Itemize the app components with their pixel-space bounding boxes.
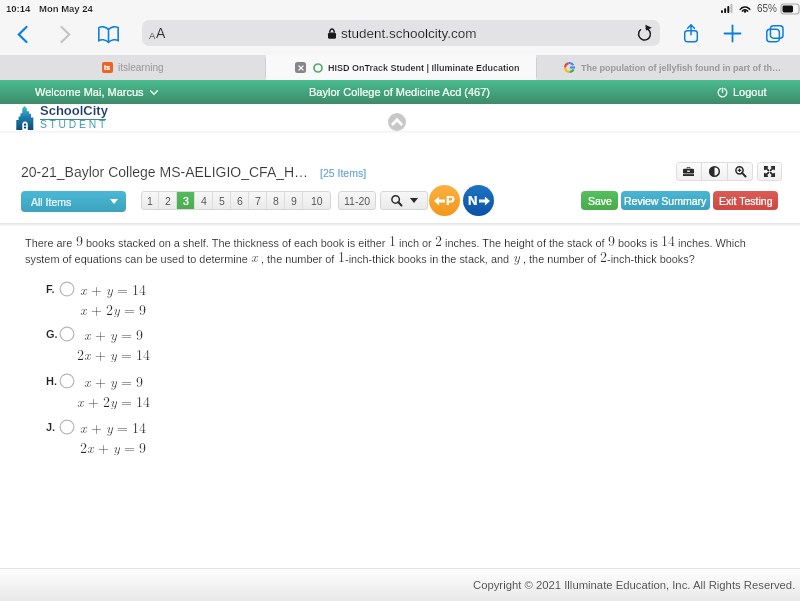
staticText: student.schoolcity.com: [341, 26, 477, 41]
button[interactable]: Back: [8, 20, 38, 48]
staticText: , the number of: [261, 253, 335, 265]
staticText: x: [80, 299, 87, 317]
button[interactable]: 3: [177, 191, 194, 210]
staticText: =: [117, 279, 128, 299]
button[interactable]: Welcome Mai, Marcus: [35, 80, 158, 104]
button[interactable]: Full screen: [757, 162, 782, 181]
button[interactable]: 10: [303, 191, 331, 210]
button[interactable]: 4: [195, 191, 212, 210]
staticText: J.: [46, 421, 56, 433]
button[interactable]: Bookmarks: [94, 21, 122, 47]
button[interactable]: J.: [44, 417, 156, 455]
staticText: y: [110, 324, 117, 344]
staticText: F.: [46, 283, 55, 295]
staticText: SchoolCity: [40, 103, 108, 118]
staticText: y: [110, 344, 117, 362]
staticText: system of equations can be used to deter…: [25, 253, 248, 265]
button[interactable]: Save: [581, 191, 618, 210]
staticText: x: [84, 371, 91, 391]
staticText: G.: [46, 328, 58, 340]
staticText: 2: [600, 246, 607, 266]
button[interactable]: Previous page: [429, 185, 460, 216]
button[interactable]: 11-20: [338, 191, 376, 210]
button[interactable]: 2: [159, 191, 176, 210]
button[interactable]: All Items: [21, 191, 126, 212]
button[interactable]: ts: [0, 55, 266, 80]
staticText: x: [80, 279, 87, 299]
staticText: The population of jellyfish found in par…: [581, 63, 781, 73]
staticText: Mon May 24: [39, 3, 93, 14]
staticText: 2: [77, 344, 84, 362]
button[interactable]: Share: [678, 20, 704, 46]
button[interactable]: Reload: [634, 23, 654, 43]
button[interactable]: Exit Testing: [713, 191, 778, 210]
staticText: There are: [25, 237, 73, 249]
staticText: 9: [139, 437, 146, 455]
staticText: y: [513, 246, 520, 266]
staticText: =: [117, 417, 128, 437]
staticText: 14: [132, 417, 146, 437]
staticText: inches. Which: [678, 237, 746, 249]
button[interactable]: [25 Items]: [320, 167, 367, 179]
button[interactable]: Search items: [380, 191, 428, 210]
button[interactable]: Forward: [50, 20, 80, 48]
button[interactable]: Show tabs: [761, 20, 787, 46]
staticText: 7: [255, 195, 261, 207]
staticText: 9: [136, 324, 143, 344]
button[interactable]: H.: [44, 371, 156, 409]
button[interactable]: Contrast: [702, 162, 727, 181]
staticText: H.: [46, 375, 57, 387]
staticText: 1: [389, 230, 396, 250]
staticText: 9: [76, 230, 83, 250]
staticText: HISD OnTrack Student | Illuminate Educat…: [328, 63, 520, 73]
staticText: x: [80, 417, 87, 437]
button[interactable]: Next page: [463, 185, 494, 216]
button[interactable]: Text size: [142, 20, 200, 46]
staticText: x: [87, 437, 94, 455]
staticText: y: [113, 437, 120, 455]
staticText: Baylor College of Medicine Acd (467): [309, 86, 490, 98]
staticText: +: [98, 437, 109, 455]
staticText: =: [121, 344, 132, 362]
button[interactable]: Logout: [717, 80, 767, 104]
button[interactable]: Tools: [676, 162, 701, 181]
button[interactable]: F.: [44, 279, 156, 317]
staticText: 2: [435, 230, 442, 250]
staticText: 10: [311, 195, 323, 207]
staticText: 14: [132, 279, 146, 299]
staticText: y: [106, 279, 113, 299]
button[interactable]: The population of jellyfish found in par…: [537, 55, 800, 80]
button[interactable]: HISD OnTrack Student | Illuminate Educat…: [266, 55, 536, 80]
button[interactable]: New tab: [719, 20, 745, 46]
staticText: +: [95, 371, 106, 391]
staticText: =: [121, 371, 132, 391]
staticText: x: [84, 324, 91, 344]
staticText: 14: [136, 391, 150, 409]
staticText: y: [110, 371, 117, 391]
staticText: 2: [165, 195, 171, 207]
button[interactable]: 9: [285, 191, 302, 210]
button[interactable]: 1: [141, 191, 158, 210]
button[interactable]: 6: [231, 191, 248, 210]
staticText: 1: [338, 246, 345, 266]
staticText: -inch-thick books?: [607, 253, 695, 265]
button[interactable]: G.: [44, 324, 156, 362]
staticText: 6: [237, 195, 243, 207]
button[interactable]: 5: [213, 191, 230, 210]
staticText: 9: [136, 371, 143, 391]
staticText: 4: [201, 195, 207, 207]
button[interactable]: Zoom: [728, 162, 753, 181]
staticText: Copyright © 2021 Illuminate Education, I…: [473, 579, 796, 592]
button[interactable]: student.schoolcity.com: [328, 26, 477, 41]
staticText: +: [88, 391, 99, 409]
button[interactable]: Review Summary: [621, 191, 710, 210]
staticText: Welcome Mai, Marcus: [35, 86, 144, 98]
staticText: S T U D E N T: [40, 119, 106, 131]
button[interactable]: Collapse header: [388, 113, 406, 131]
button[interactable]: 7: [249, 191, 266, 210]
staticText: Save: [588, 195, 612, 207]
staticText: 65%: [757, 3, 778, 14]
staticText: +: [91, 417, 102, 437]
staticText: +: [95, 344, 106, 362]
button[interactable]: 8: [267, 191, 284, 210]
